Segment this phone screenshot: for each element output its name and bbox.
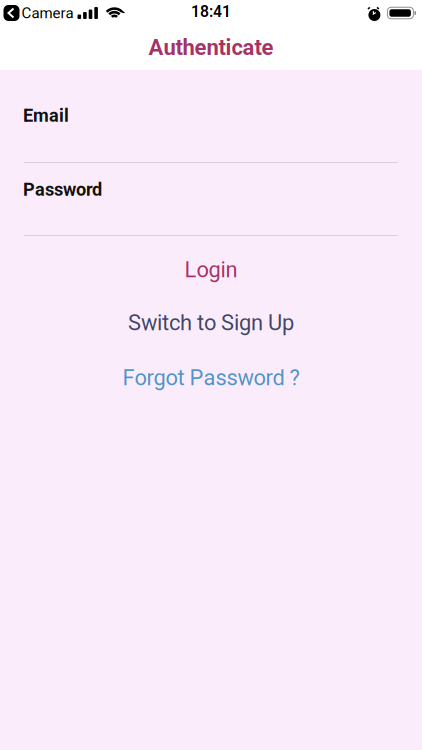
button[interactable]: Back to Camera — [3, 4, 73, 22]
staticText: 18:41 — [191, 2, 231, 21]
staticText: Forgot Password ? — [122, 365, 299, 391]
button[interactable]: Forgot Password ? — [122, 365, 299, 391]
staticText: Email — [23, 105, 69, 126]
staticText: Switch to Sign Up — [128, 310, 294, 336]
staticText: Login — [184, 257, 237, 283]
button[interactable]: Switch to Sign Up — [128, 310, 294, 336]
staticText: Authenticate — [148, 35, 273, 60]
staticText: Password — [23, 179, 102, 200]
button[interactable]: Login — [184, 257, 237, 283]
staticText: Camera — [21, 4, 73, 22]
